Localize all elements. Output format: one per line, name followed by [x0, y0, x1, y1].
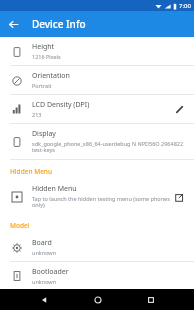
button[interactable]: Board: [0, 233, 194, 261]
staticText: Hidden Menu: [10, 167, 53, 176]
staticText: 7:00: [179, 2, 191, 10]
staticText: Height: [32, 42, 55, 52]
staticText: 213: [32, 111, 42, 118]
staticText: Device Info: [32, 17, 86, 31]
button[interactable]: Hidden Menu: [0, 179, 194, 214]
button[interactable]: Back: [0, 11, 26, 37]
staticText: 1216 Pixels: [32, 53, 61, 60]
staticText: Board: [32, 238, 52, 248]
staticText: Model: [10, 221, 30, 230]
staticText: Orientation: [32, 71, 70, 81]
staticText: Portrait: [32, 82, 52, 89]
button[interactable]: Open: [171, 189, 187, 205]
staticText: Hidden Menu: [32, 184, 77, 194]
button[interactable]: Orientation: [0, 66, 194, 94]
button[interactable]: LCD Density (DPI): [0, 95, 194, 123]
staticText: unknown: [32, 249, 57, 256]
staticText: Bootloader: [32, 267, 69, 277]
staticText: Display: [32, 129, 56, 139]
staticText: unknown: [32, 278, 57, 284]
button[interactable]: Bootloader: [0, 262, 194, 289]
button[interactable]: Height: [0, 37, 194, 65]
staticText: LCD Density (DPI): [32, 100, 90, 110]
button[interactable]: Display: [0, 124, 194, 159]
button[interactable]: Home: [87, 289, 108, 310]
button[interactable]: Back: [33, 289, 54, 310]
button[interactable]: Edit: [171, 101, 187, 117]
staticText: Tap to launch the hidden testing menu (s…: [32, 195, 171, 209]
button[interactable]: Recent apps: [140, 289, 161, 310]
staticText: sdk_google_phone_x86_64-userdebug N NPD5…: [32, 140, 187, 154]
